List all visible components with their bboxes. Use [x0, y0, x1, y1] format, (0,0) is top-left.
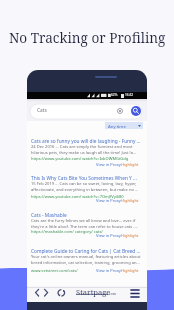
- staticText: breed information, cat selection, traini…: [31, 260, 140, 266]
- staticText: www.vetstreet.com/cats/: [31, 268, 78, 273]
- staticText: https://www.youtube.com/ watch?v=IxbOWMG…: [31, 156, 129, 161]
- button[interactable]: Startpage: [76, 287, 118, 298]
- button[interactable]: Cats - Mashable: [31, 212, 143, 238]
- staticText: Highlight: [121, 162, 139, 167]
- staticText: they're a little aloof. The term can ref…: [31, 224, 138, 230]
- staticText: Your cat's online owners manual, featuri…: [31, 254, 141, 260]
- staticText: .com: [108, 291, 117, 296]
- staticText: View in Proxy: [96, 233, 121, 238]
- staticText: Highlight: [121, 198, 139, 203]
- staticText: Startpage: [76, 287, 111, 297]
- button[interactable]: Clear search: [117, 108, 123, 114]
- button[interactable]: Back: [34, 288, 43, 297]
- button[interactable]: Search: [131, 106, 141, 116]
- staticText: No Tracking or Profiling: [9, 28, 166, 47]
- staticText: Highlight: [121, 233, 139, 238]
- staticText: This Is Why Cats Bite You Sometimes When…: [31, 175, 137, 182]
- staticText: View in Proxy: [96, 198, 121, 203]
- staticText: hilarious pets, they make us laugh all t…: [31, 150, 137, 156]
- button[interactable]: [30, 104, 142, 119]
- button[interactable]: Reload: [57, 288, 66, 297]
- staticText: Complete Guide to Caring for Cats | Cat …: [31, 248, 141, 255]
- button[interactable]: Cats are so funny you will die laughing …: [31, 138, 143, 167]
- staticText: Any time: [108, 123, 126, 129]
- button[interactable]: Forward: [43, 288, 52, 297]
- staticText: View in Proxy: [96, 162, 121, 167]
- staticText: 24 Dec 2016 ... Cats are simply the funn…: [31, 144, 133, 150]
- staticText: 62%: [111, 93, 118, 97]
- staticText: Cats: [37, 107, 47, 114]
- staticText: Cats are so funny you will die laughing …: [31, 138, 141, 145]
- staticText: View in Proxy: [96, 268, 121, 273]
- button[interactable]: Complete Guide to Caring for Cats | Cat …: [31, 248, 143, 273]
- button[interactable]: Menu: [130, 289, 140, 297]
- staticText: Highlight: [121, 268, 139, 273]
- staticText: Cats - Mashable: [31, 212, 67, 219]
- staticText: 15 Feb 2019 ... Cats can be so sweet, lo…: [31, 181, 143, 187]
- staticText: https://mashable.com/ category/ cats/: [31, 229, 103, 234]
- button[interactable]: This Is Why Cats Bite You Sometimes When…: [31, 175, 143, 203]
- staticText: 16:32: [125, 93, 134, 97]
- button[interactable]: Any time: [105, 122, 143, 129]
- staticText: https://www.youtube.com/ watch?v=7OmJfVy…: [31, 194, 124, 199]
- staticText: affectionate, and everything in between,…: [31, 187, 139, 193]
- staticText: Cats are the furry felines we all know a…: [31, 218, 136, 224]
